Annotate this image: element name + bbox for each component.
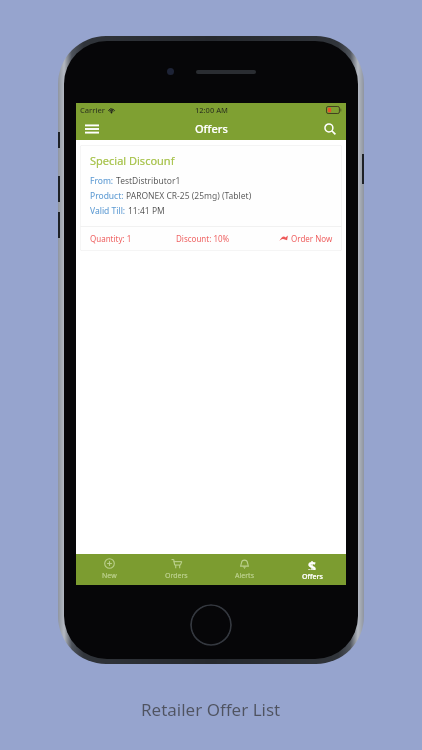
staticText: Quantity: 1 (90, 233, 132, 244)
staticText: $ (308, 557, 317, 570)
staticText: From: (90, 175, 116, 187)
button[interactable]: Special Discounf (80, 145, 342, 251)
staticText: Valid Till: (90, 205, 128, 217)
button[interactable]: $ (278, 554, 346, 585)
staticText: New (102, 571, 117, 581)
staticText: Carrier (80, 105, 105, 115)
button[interactable]: Search (314, 117, 346, 140)
staticText: Offers (302, 572, 323, 582)
staticText: PARONEX CR-25 (25mg) (Tablet) (126, 190, 252, 202)
button[interactable]: Home (190, 604, 232, 646)
staticText: Orders (165, 571, 188, 581)
button[interactable]: New (76, 554, 143, 585)
staticText: 12:00 AM (195, 105, 228, 115)
staticText: 11:41 PM (128, 205, 165, 217)
button[interactable]: Order Now (277, 233, 333, 244)
button[interactable]: Open navigation menu (76, 117, 108, 140)
staticText: TestDistributor1 (116, 175, 181, 187)
staticText: Order Now (291, 233, 333, 244)
staticText: Special Discounf (90, 153, 175, 168)
staticText: Discount: 10% (176, 233, 230, 244)
staticText: Retailer Offer List (141, 698, 281, 721)
staticText: Product: (90, 190, 126, 202)
button[interactable]: Alerts (210, 554, 278, 585)
staticText: Offers (195, 121, 228, 136)
staticText: Alerts (235, 571, 254, 581)
button[interactable]: Orders (143, 554, 210, 585)
